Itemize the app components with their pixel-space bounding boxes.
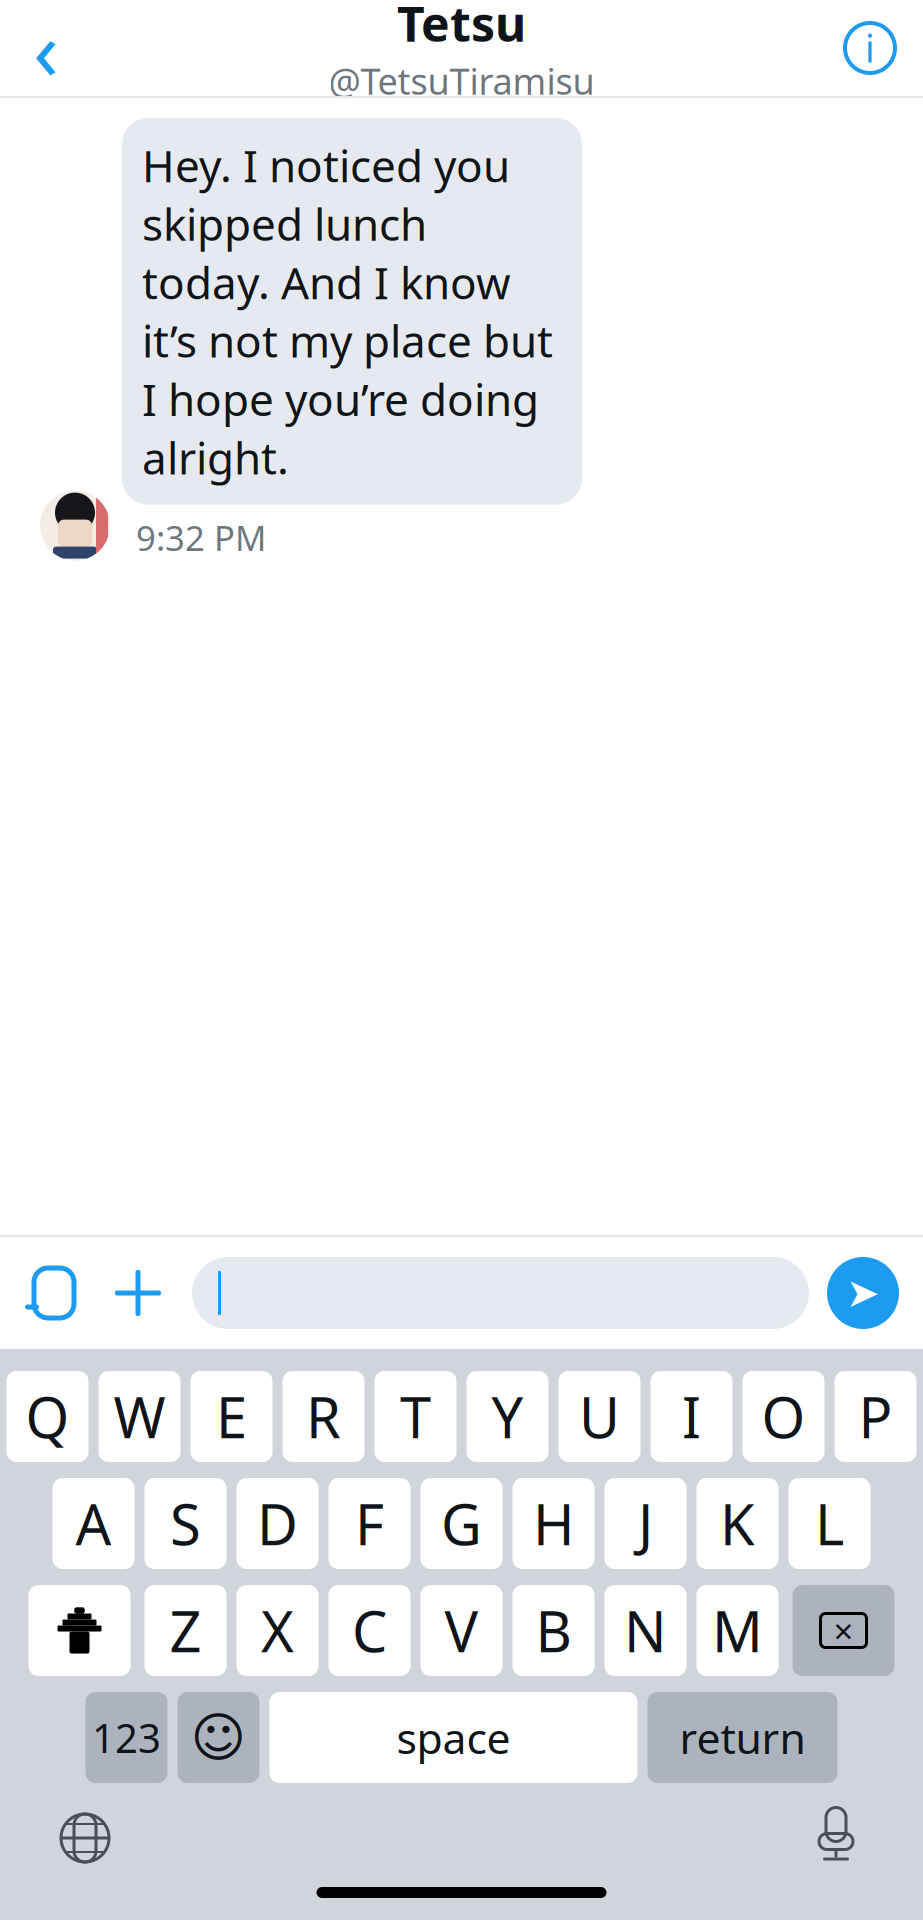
button[interactable]: S	[144, 1478, 226, 1569]
staticText: X	[261, 1593, 294, 1668]
staticText: G	[441, 1486, 482, 1561]
staticText: M	[712, 1593, 763, 1668]
button[interactable]: C	[328, 1585, 410, 1676]
staticText: L	[815, 1486, 844, 1561]
button[interactable]: Next keyboard	[42, 1795, 128, 1881]
button[interactable]: G	[420, 1478, 502, 1569]
button[interactable]: X	[236, 1585, 318, 1676]
staticText: @TetsuTiramisu	[328, 57, 594, 105]
button[interactable]: Q	[6, 1371, 88, 1462]
staticText: E	[216, 1379, 247, 1454]
staticText: A	[75, 1486, 111, 1561]
button[interactable]: O	[742, 1371, 824, 1462]
staticText: P	[858, 1379, 892, 1454]
button[interactable]: H	[512, 1478, 594, 1569]
staticText: O	[761, 1379, 805, 1454]
button[interactable]: Z	[144, 1585, 226, 1676]
button[interactable]: space	[269, 1692, 637, 1783]
button[interactable]: I	[650, 1371, 732, 1462]
staticText: N	[624, 1593, 667, 1668]
staticText: Hey. I noticed you skipped lunch today. …	[142, 136, 553, 487]
staticText: S	[170, 1486, 201, 1561]
staticText: V	[444, 1593, 478, 1668]
staticText: B	[535, 1593, 571, 1668]
button[interactable]: D	[236, 1478, 318, 1569]
staticText: return	[679, 1709, 805, 1766]
staticText: 123	[92, 1711, 161, 1764]
button[interactable]: return	[647, 1692, 837, 1783]
button[interactable]: Conversation info	[841, 19, 923, 77]
staticText: C	[352, 1593, 387, 1668]
button[interactable]: K	[696, 1478, 778, 1569]
button[interactable]: E	[190, 1371, 272, 1462]
staticText: W	[113, 1379, 165, 1454]
staticText: D	[257, 1486, 298, 1561]
button[interactable]: Numbers	[85, 1692, 167, 1783]
staticText: Q	[25, 1379, 69, 1454]
staticText: I	[682, 1379, 701, 1454]
staticText: Y	[491, 1379, 523, 1454]
button[interactable]: L	[788, 1478, 870, 1569]
staticText: space	[396, 1709, 510, 1766]
button[interactable]: Send	[827, 1257, 899, 1329]
staticText: Z	[169, 1593, 201, 1668]
staticText: Tetsu	[397, 0, 526, 55]
staticText: ‹	[33, 0, 59, 103]
button[interactable]: U	[558, 1371, 640, 1462]
staticText: ×	[833, 1607, 853, 1653]
staticText: H	[533, 1486, 574, 1561]
staticText: K	[720, 1486, 755, 1561]
staticText: F	[355, 1486, 384, 1561]
staticText: ☺	[190, 1707, 246, 1768]
staticText: 9:32 PM	[136, 515, 266, 561]
button[interactable]: Add media	[100, 1250, 176, 1336]
button[interactable]: Back	[0, 0, 84, 96]
button[interactable]: Dictate	[793, 1795, 879, 1881]
staticText: T	[400, 1379, 431, 1454]
button[interactable]: A	[52, 1478, 134, 1569]
button[interactable]: W	[98, 1371, 180, 1462]
staticText: R	[306, 1379, 341, 1454]
staticText: U	[579, 1379, 620, 1454]
button[interactable]: Emoji	[177, 1692, 259, 1783]
button[interactable]: M	[696, 1585, 778, 1676]
button[interactable]: T	[374, 1371, 456, 1462]
staticText: i	[865, 23, 875, 73]
button[interactable]: P	[834, 1371, 916, 1462]
button[interactable]: Add GIF	[16, 1250, 92, 1336]
staticText: J	[638, 1486, 653, 1561]
button[interactable]: Delete	[792, 1585, 894, 1676]
button[interactable]: B	[512, 1585, 594, 1676]
button[interactable]: J	[604, 1478, 686, 1569]
button[interactable]: V	[420, 1585, 502, 1676]
button[interactable]: N	[604, 1585, 686, 1676]
button[interactable]: Y	[466, 1371, 548, 1462]
button[interactable]: F	[328, 1478, 410, 1569]
button[interactable]: Shift	[28, 1585, 130, 1676]
staticText: ➤	[846, 1270, 880, 1316]
button[interactable]: R	[282, 1371, 364, 1462]
